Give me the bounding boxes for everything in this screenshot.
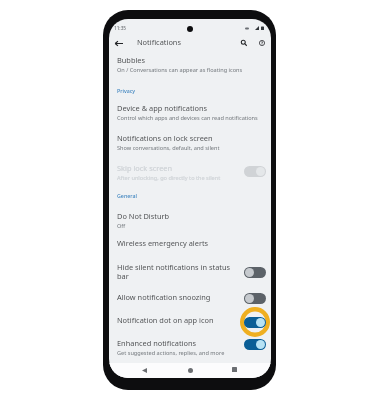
button[interactable] <box>244 166 266 177</box>
staticText: Device & app notifications <box>117 103 208 113</box>
button[interactable]: Notification dot on app icon <box>109 315 271 325</box>
staticText: Skip lock screen <box>117 163 173 173</box>
button[interactable]: Home <box>183 363 198 378</box>
button[interactable]: Wireless emergency alerts <box>109 238 271 248</box>
button[interactable] <box>244 317 266 328</box>
staticText: Hide silent notifications in status bar <box>117 262 239 281</box>
staticText: Bubbles <box>117 55 146 65</box>
staticText: Notifications <box>137 37 181 47</box>
staticText: 11:35 <box>114 25 127 31</box>
staticText: Control which apps and devices can read … <box>117 114 258 122</box>
button[interactable] <box>244 293 266 304</box>
button[interactable]: Back <box>137 363 152 378</box>
staticText: Show conversations, default, and silent <box>117 144 220 152</box>
button[interactable]: Enhanced notifications <box>109 338 271 357</box>
staticText: Off <box>117 222 126 230</box>
button[interactable]: Skip lock screen <box>109 163 271 182</box>
staticText: Notifications on lock screen <box>117 133 213 143</box>
staticText: General <box>117 192 137 199</box>
button[interactable]: Notifications on lock screen <box>109 133 271 152</box>
button[interactable]: Back <box>110 35 126 51</box>
button[interactable]: Recents <box>227 362 242 377</box>
staticText: Allow notification snoozing <box>117 292 211 302</box>
staticText: Enhanced notifications <box>117 338 197 348</box>
staticText: Privacy <box>117 87 136 94</box>
staticText: Wireless emergency alerts <box>117 238 209 248</box>
staticText: After unlocking, go directly to the sile… <box>117 174 221 182</box>
button[interactable]: Bubbles <box>109 55 271 74</box>
staticText: On / Conversations can appear as floatin… <box>117 66 243 74</box>
button[interactable]: Help <box>254 35 270 51</box>
staticText: Get suggested actions, replies, and more <box>117 349 225 357</box>
button[interactable]: Do Not Disturb <box>109 211 271 230</box>
button[interactable]: Search <box>236 35 252 51</box>
staticText: Notification dot on app icon <box>117 315 214 325</box>
button[interactable]: Device & app notifications <box>109 103 271 122</box>
button[interactable] <box>244 267 266 278</box>
button[interactable] <box>244 339 266 350</box>
button[interactable]: Hide silent notifications in status bar <box>109 262 271 281</box>
button[interactable]: Allow notification snoozing <box>109 292 271 302</box>
staticText: Do Not Disturb <box>117 211 170 221</box>
